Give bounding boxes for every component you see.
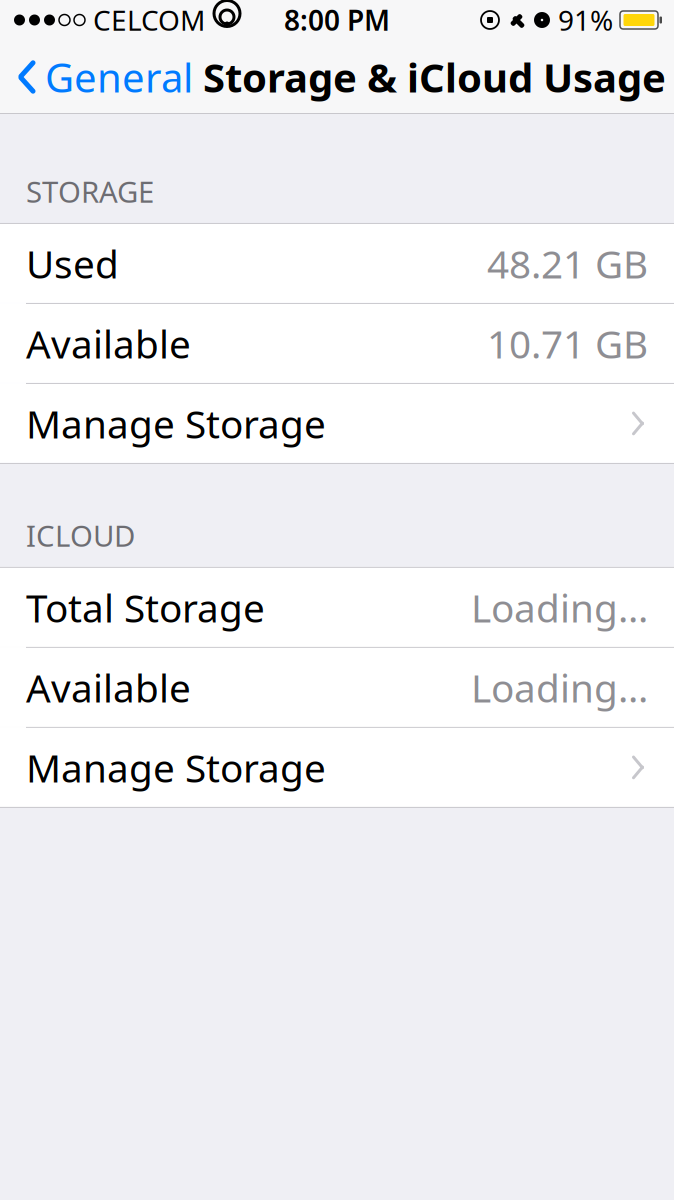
staticText: 10.71 GB <box>487 318 648 369</box>
button[interactable]: Manage Storage <box>0 728 674 807</box>
button[interactable]: Available <box>0 304 674 383</box>
button[interactable]: Available <box>0 648 674 727</box>
button[interactable]: General <box>0 40 199 114</box>
staticText: 48.21 GB <box>487 238 648 289</box>
button[interactable]: Total Storage <box>0 568 674 647</box>
staticText: Available <box>26 662 191 713</box>
staticText: CELCOM <box>93 1 205 39</box>
button[interactable]: Used <box>0 224 674 303</box>
staticText: Loading... <box>471 662 648 713</box>
staticText: Manage Storage <box>26 398 326 449</box>
staticText: 8:00 PM <box>284 1 390 39</box>
button[interactable]: Manage Storage <box>0 384 674 463</box>
staticText: Total Storage <box>26 582 265 633</box>
staticText: ICLOUD <box>26 516 135 555</box>
staticText: General <box>45 50 193 103</box>
staticText: 91% <box>558 1 613 39</box>
staticText: Loading... <box>471 582 648 633</box>
staticText: Used <box>26 238 119 289</box>
staticText: STORAGE <box>26 172 154 211</box>
staticText: Available <box>26 318 191 369</box>
staticText: Storage & iCloud Usage <box>203 50 666 103</box>
staticText: Manage Storage <box>26 742 326 793</box>
